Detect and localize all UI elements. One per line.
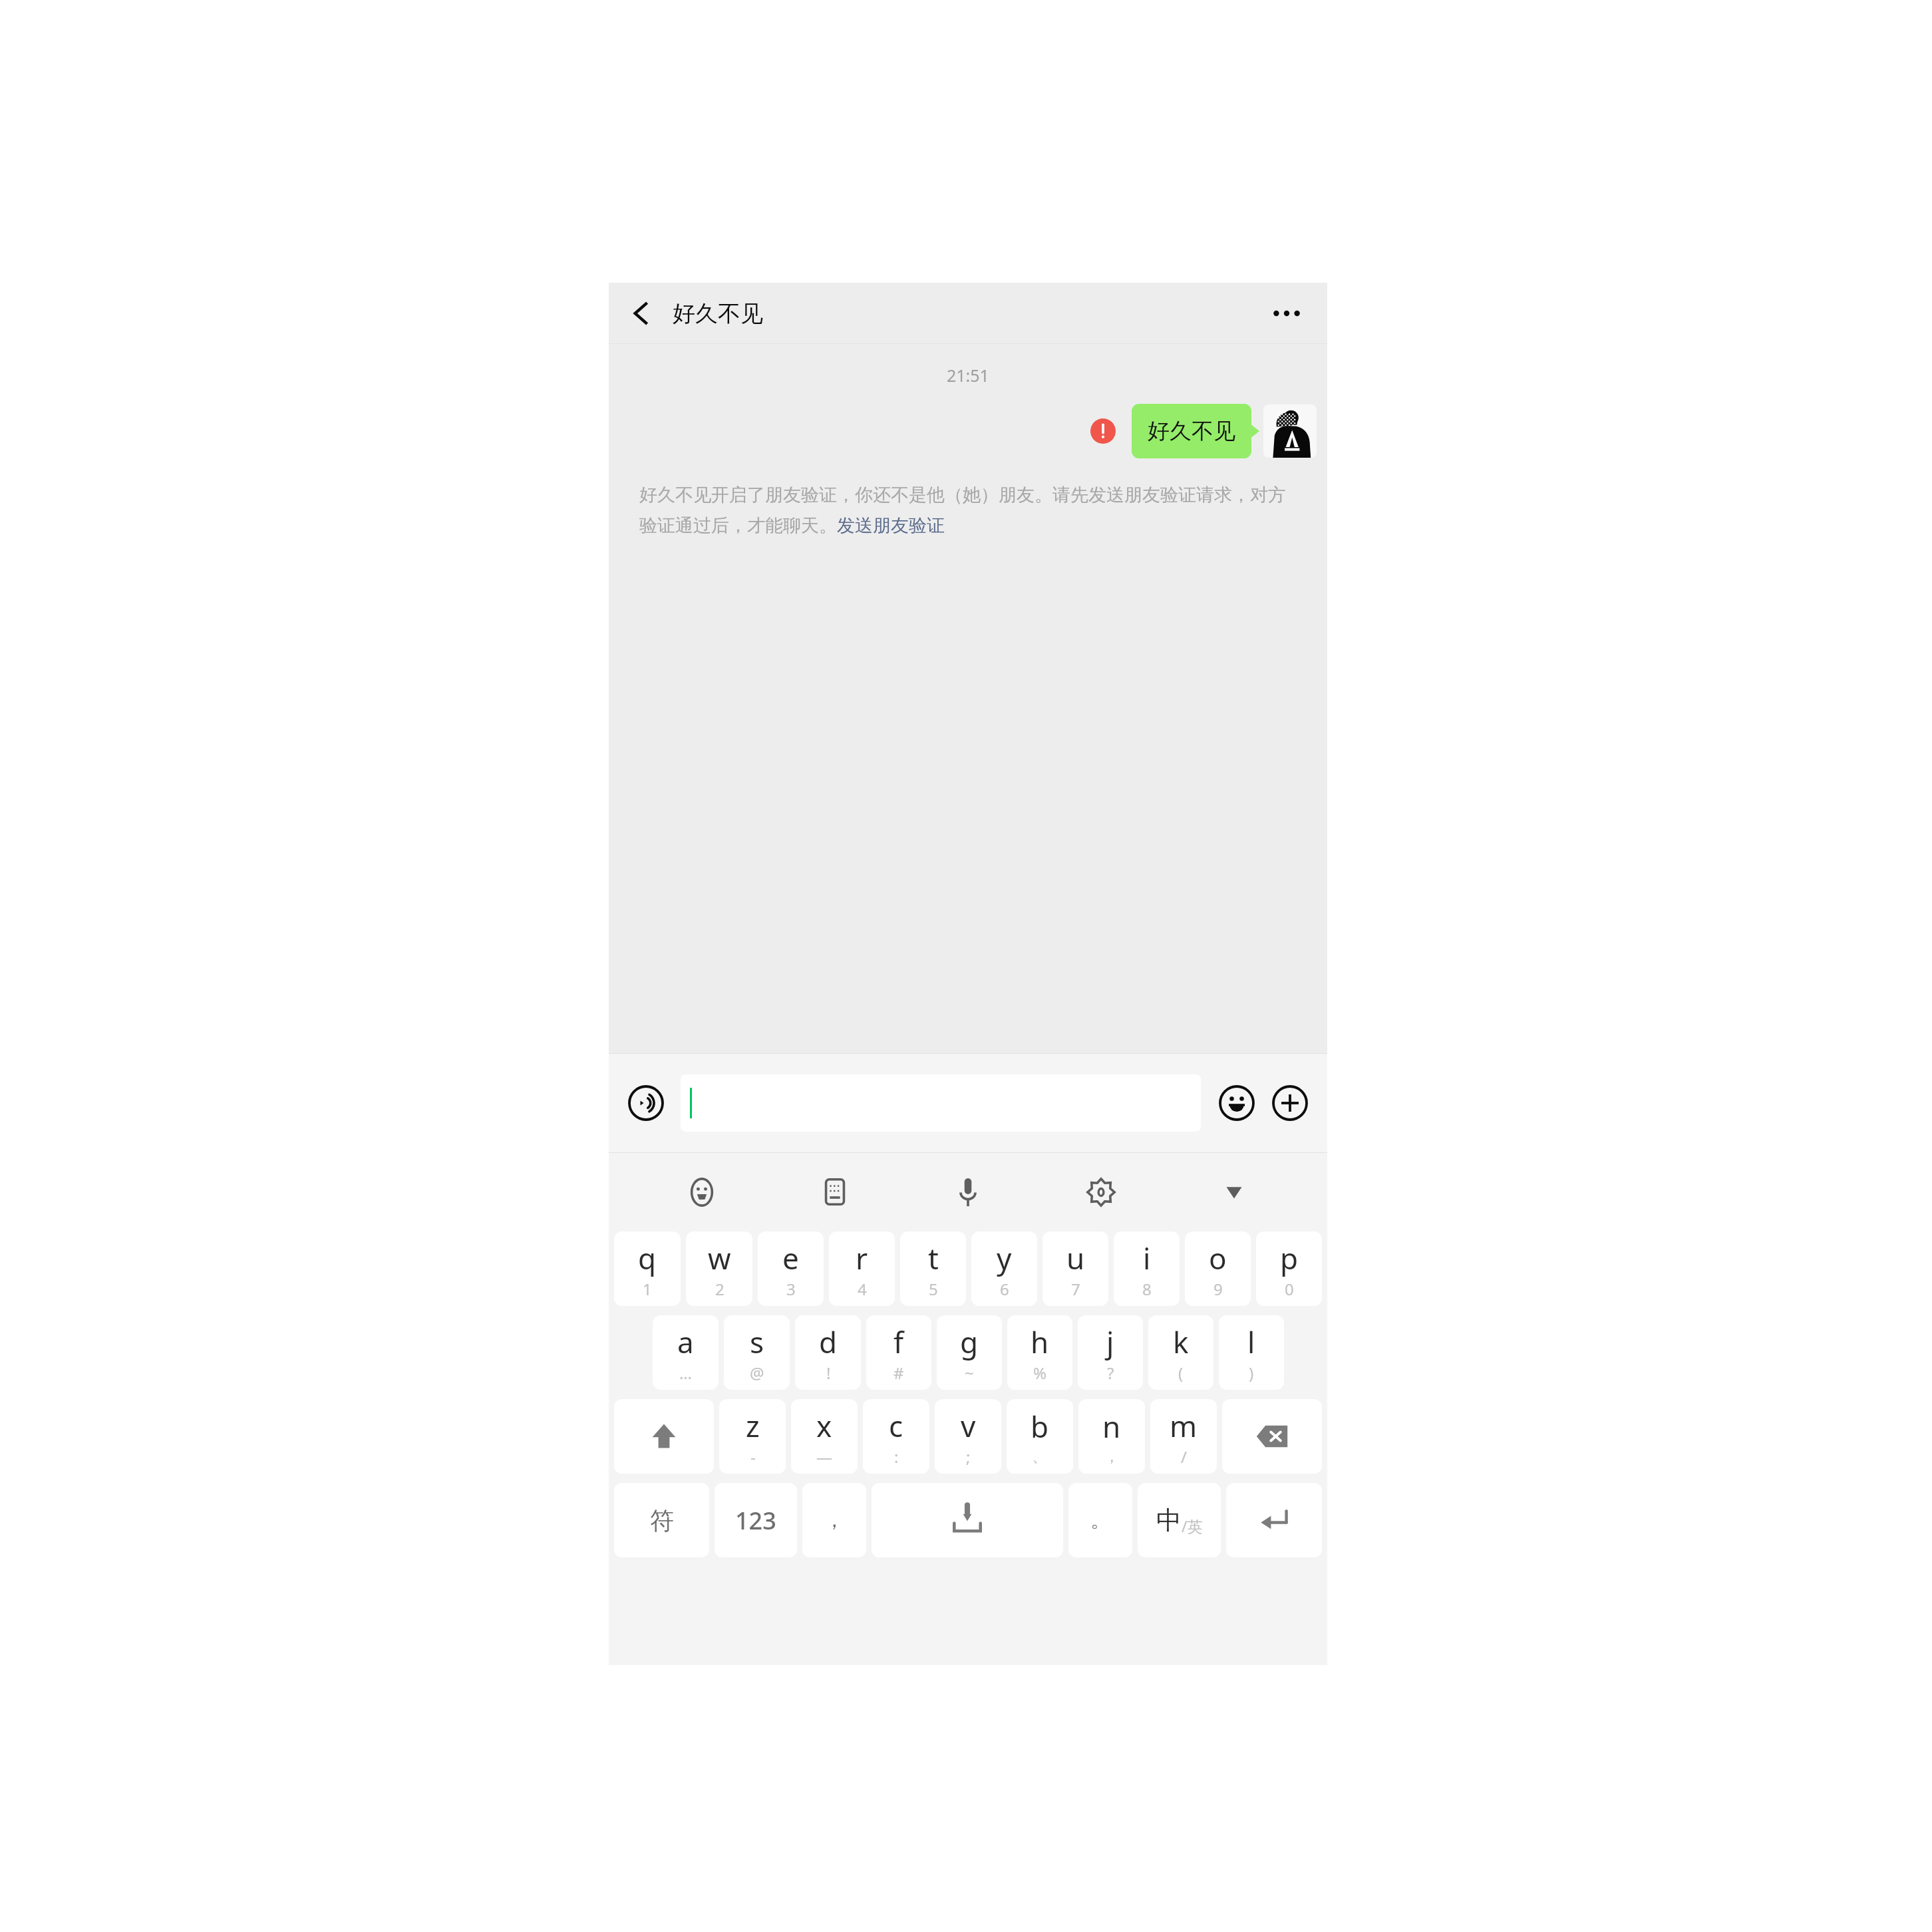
button[interactable]: Emoji: [1211, 1078, 1262, 1128]
staticText: h: [1031, 1322, 1049, 1362]
staticText: z: [746, 1406, 760, 1446]
button[interactable]: Backspace: [1222, 1399, 1322, 1474]
button[interactable]: p: [1256, 1231, 1322, 1306]
staticText: 好久不见: [673, 299, 763, 328]
button[interactable]: e: [758, 1231, 824, 1306]
button[interactable]: q: [614, 1231, 681, 1306]
button[interactable]: Emoji keyboard: [675, 1166, 728, 1219]
button[interactable]: 123: [715, 1483, 797, 1557]
button[interactable]: f: [866, 1315, 931, 1390]
staticText: /英: [1182, 1516, 1203, 1536]
staticText: j: [1106, 1322, 1114, 1362]
staticText: 好久不见开启了朋友验证，你还不是他（她）朋友。请先发送朋友验证请求，对方验证通过…: [639, 484, 1297, 537]
button[interactable]: Enter: [1226, 1483, 1322, 1557]
staticText: y: [997, 1238, 1012, 1278]
staticText: ): [1249, 1362, 1254, 1384]
staticText: u: [1066, 1238, 1085, 1278]
button[interactable]: t: [900, 1231, 966, 1306]
staticText: ?: [1107, 1362, 1114, 1384]
staticText: o: [1209, 1238, 1227, 1278]
button[interactable]: h: [1007, 1315, 1072, 1390]
button[interactable]: Keyboard layout: [808, 1166, 862, 1219]
staticText: c: [889, 1406, 903, 1446]
button[interactable]: [681, 1074, 1201, 1132]
button[interactable]: Space: [872, 1483, 1063, 1557]
button[interactable]: v: [935, 1399, 1001, 1474]
button[interactable]: Voice input: [621, 1078, 671, 1128]
button[interactable]: Keyboard settings: [1074, 1166, 1128, 1219]
button[interactable]: u: [1043, 1231, 1108, 1306]
button[interactable]: z: [719, 1399, 786, 1474]
button[interactable]: y: [971, 1231, 1037, 1306]
staticText: i: [1143, 1238, 1151, 1278]
button[interactable]: Contact avatar: [1263, 404, 1317, 458]
button[interactable]: g: [937, 1315, 1002, 1390]
button[interactable]: 符: [614, 1483, 709, 1557]
staticText: 中: [1156, 1504, 1182, 1536]
button[interactable]: o: [1185, 1231, 1251, 1306]
button[interactable]: m: [1150, 1399, 1217, 1474]
staticText: 7: [1071, 1278, 1080, 1300]
staticText: g: [960, 1322, 979, 1362]
staticText: 0: [1285, 1278, 1294, 1300]
button[interactable]: b: [1007, 1399, 1073, 1474]
staticText: p: [1280, 1238, 1299, 1278]
staticText: s: [750, 1322, 764, 1362]
button[interactable]: w: [686, 1231, 752, 1306]
button[interactable]: Shift: [614, 1399, 714, 1474]
staticText: 5: [929, 1278, 938, 1300]
button[interactable]: More functions: [1265, 1078, 1315, 1128]
staticText: !: [826, 1362, 831, 1384]
staticText: -: [750, 1446, 756, 1468]
button[interactable]: 。: [1068, 1483, 1132, 1557]
staticText: 123: [735, 1504, 776, 1537]
staticText: 6: [1000, 1278, 1009, 1300]
staticText: ，: [1104, 1446, 1120, 1466]
button[interactable]: s: [724, 1315, 790, 1390]
button[interactable]: i: [1114, 1231, 1180, 1306]
button[interactable]: l: [1219, 1315, 1284, 1390]
button[interactable]: Message failed to send: [1090, 418, 1116, 444]
staticText: #: [893, 1362, 904, 1384]
staticText: 符: [650, 1506, 674, 1535]
staticText: ~: [965, 1362, 974, 1384]
button[interactable]: 好久不见: [1132, 404, 1251, 458]
staticText: ，: [824, 1508, 844, 1533]
staticText: 2: [715, 1278, 724, 1300]
button[interactable]: 中: [1138, 1483, 1221, 1557]
button[interactable]: n: [1078, 1399, 1145, 1474]
staticText: 。: [1090, 1508, 1110, 1533]
button[interactable]: r: [829, 1231, 895, 1306]
staticText: —: [816, 1446, 832, 1468]
button[interactable]: j: [1078, 1315, 1143, 1390]
staticText: m: [1170, 1406, 1198, 1446]
staticText: k: [1173, 1322, 1189, 1362]
button[interactable]: More options: [1265, 291, 1309, 335]
staticText: d: [819, 1322, 838, 1362]
staticText: t: [928, 1238, 939, 1278]
staticText: (: [1178, 1362, 1184, 1384]
button[interactable]: a: [653, 1315, 719, 1390]
staticText: 9: [1213, 1278, 1223, 1300]
staticText: a: [677, 1322, 694, 1362]
staticText: f: [893, 1322, 904, 1362]
button[interactable]: k: [1148, 1315, 1213, 1390]
staticText: 8: [1142, 1278, 1152, 1300]
button[interactable]: x: [791, 1399, 858, 1474]
button[interactable]: Back: [622, 294, 661, 333]
button[interactable]: d: [795, 1315, 861, 1390]
staticText: 1: [643, 1278, 652, 1300]
staticText: x: [816, 1406, 832, 1446]
staticText: :: [894, 1446, 899, 1468]
button[interactable]: ，: [802, 1483, 866, 1557]
staticText: v: [961, 1406, 976, 1446]
staticText: 4: [858, 1278, 867, 1300]
staticText: e: [782, 1238, 799, 1278]
staticText: @: [750, 1362, 764, 1384]
staticText: …: [679, 1362, 692, 1384]
staticText: 21:51: [947, 364, 989, 387]
button[interactable]: c: [863, 1399, 929, 1474]
button[interactable]: Hide keyboard: [1207, 1166, 1261, 1219]
button[interactable]: Voice input: [941, 1166, 995, 1219]
staticText: b: [1031, 1406, 1049, 1446]
